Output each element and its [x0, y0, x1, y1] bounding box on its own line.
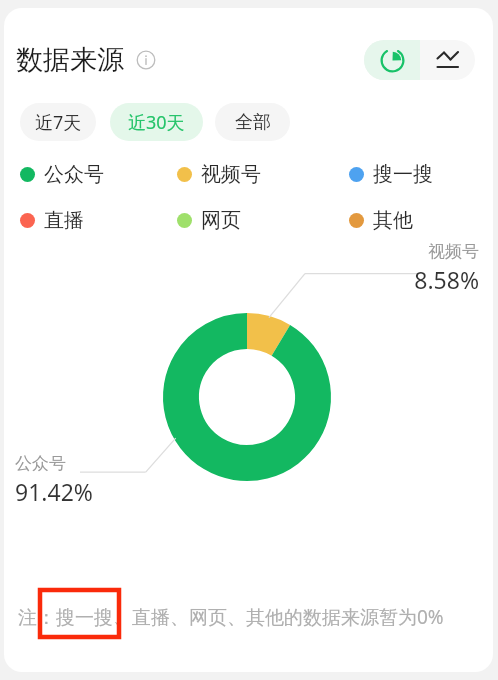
button[interactable]: 其他: [349, 205, 469, 235]
staticText: 8.58%: [319, 264, 479, 295]
staticText: 91.42%: [15, 476, 93, 507]
button[interactable]: 折线图: [420, 40, 475, 80]
button[interactable]: 公众号: [20, 159, 177, 189]
button[interactable]: 说明: [135, 49, 157, 71]
button[interactable]: 全部: [215, 103, 290, 141]
staticText: 近30天: [128, 110, 185, 135]
staticText: 其他: [373, 208, 413, 233]
button[interactable]: 视频号: [177, 159, 349, 189]
button[interactable]: 近30天: [110, 103, 203, 141]
button[interactable]: 网页: [177, 205, 349, 235]
staticText: 网页: [201, 208, 241, 233]
staticText: 公众号: [15, 453, 66, 474]
button[interactable]: 近7天: [20, 103, 96, 141]
staticText: 注：搜一搜、直播、网页、其他的数据来源暂为0%: [18, 604, 444, 630]
staticText: 近7天: [35, 110, 82, 135]
staticText: 公众号: [44, 162, 104, 187]
button[interactable]: 搜一搜: [349, 159, 469, 189]
staticText: 数据来源: [16, 43, 124, 77]
button[interactable]: 直播: [20, 205, 177, 235]
button[interactable]: 饼图: [364, 40, 420, 80]
staticText: 视频号: [201, 162, 261, 187]
staticText: 全部: [235, 111, 271, 134]
staticText: 视频号: [319, 241, 479, 262]
staticText: 搜一搜: [373, 162, 433, 187]
staticText: 直播: [44, 208, 84, 233]
